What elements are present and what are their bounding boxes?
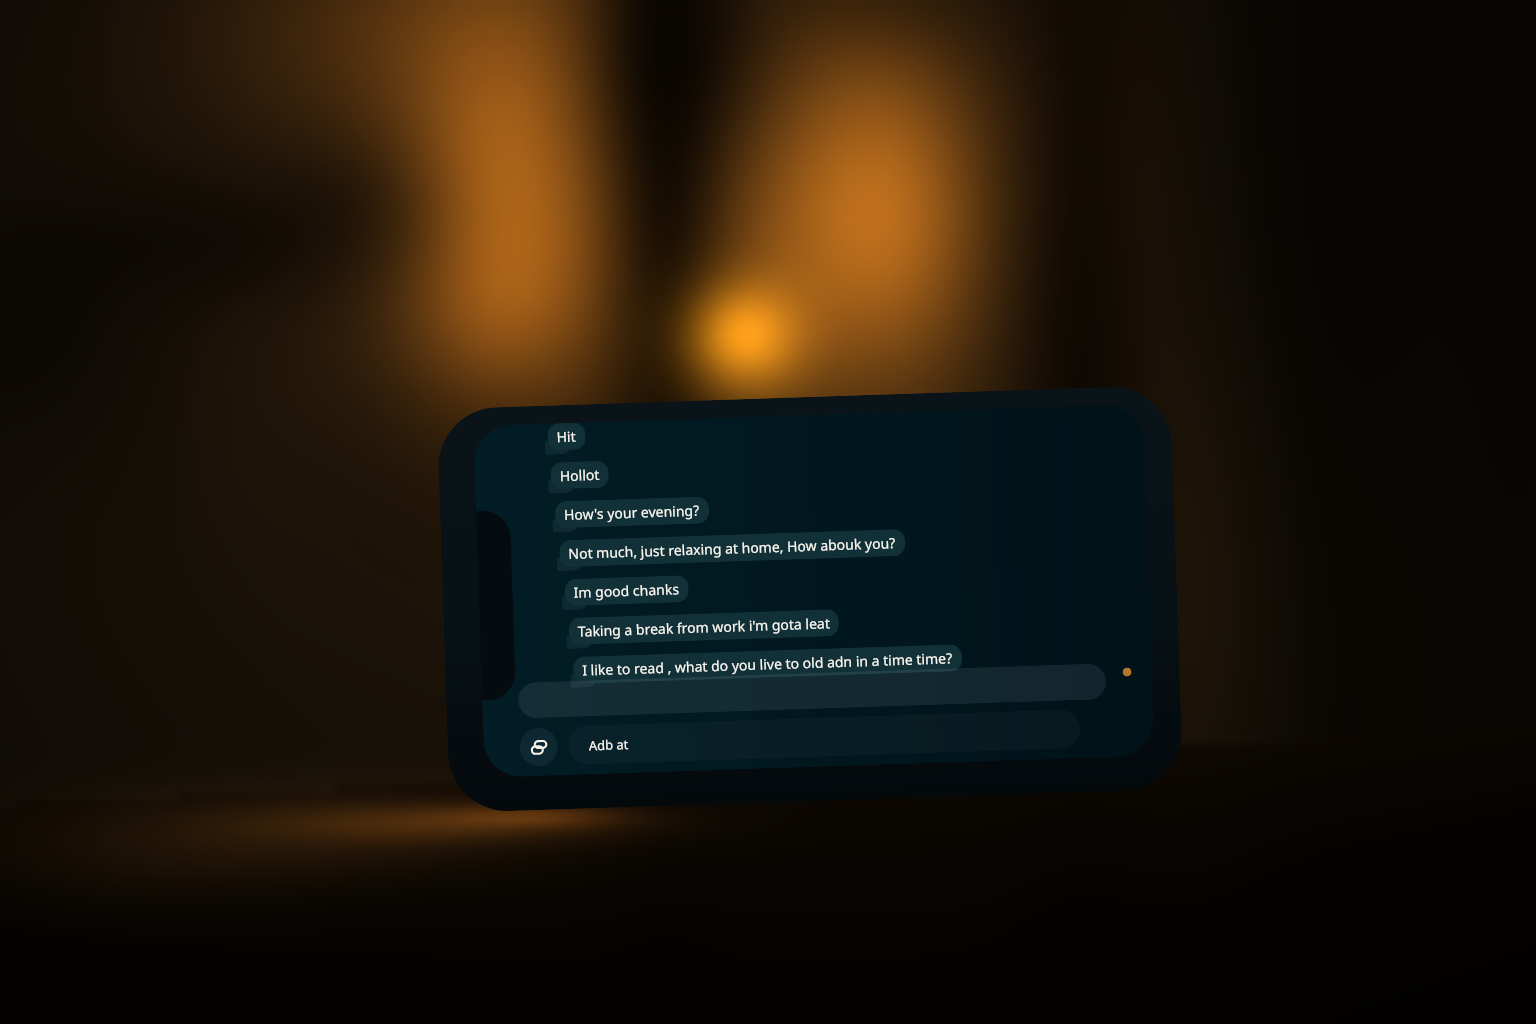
button[interactable]: Taking a break from work i'm gota leat: [568, 609, 839, 645]
button[interactable]: Hollot: [550, 461, 609, 489]
staticText: Not much, just relaxing at home, How abo…: [568, 533, 896, 563]
staticText: Hollot: [559, 465, 600, 485]
button[interactable]: Not much, just relaxing at home, How abo…: [559, 529, 906, 567]
staticText: Taking a break from work i'm gota leat: [578, 613, 830, 641]
staticText: Hit: [556, 427, 577, 446]
button[interactable]: Hit: [547, 422, 586, 451]
button[interactable]: How's your evening?: [555, 496, 709, 528]
staticText: How's your evening?: [564, 501, 700, 524]
staticText: I like to read , what do you live to old…: [582, 648, 953, 680]
button[interactable]: Im good chanks: [564, 575, 689, 606]
button[interactable]: I like to read , what do you live to old…: [573, 644, 962, 684]
button[interactable]: [518, 663, 1106, 719]
staticText: Im good chanks: [573, 579, 680, 602]
button[interactable]: Adb at: [568, 709, 1081, 765]
staticText: Adb at: [588, 735, 629, 754]
button[interactable]: Attach: [519, 727, 558, 767]
